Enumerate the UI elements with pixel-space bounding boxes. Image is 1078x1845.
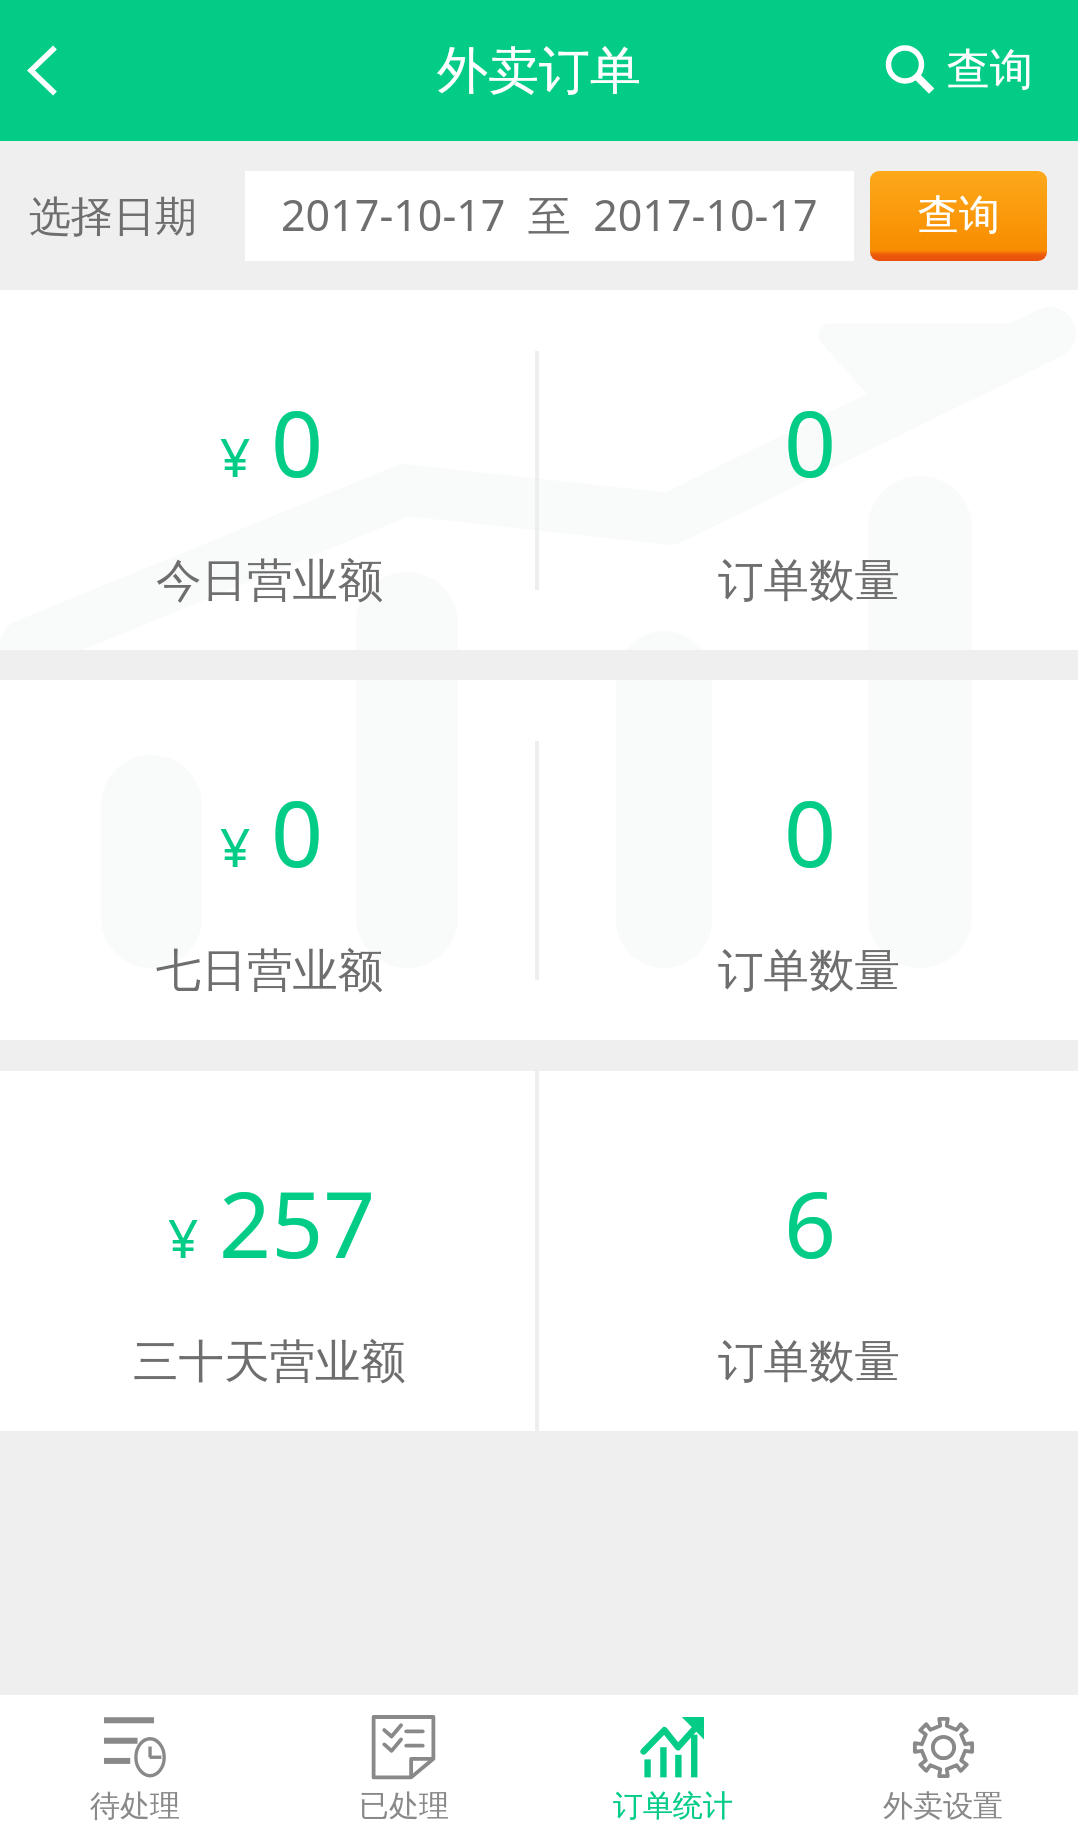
staticText: 七日营业额 (156, 942, 384, 999)
button[interactable]: 已处理 (269, 1695, 538, 1845)
staticText: 外卖设置 (883, 1787, 1003, 1825)
button[interactable]: 待处理 (0, 1695, 269, 1845)
staticText: 待处理 (90, 1787, 180, 1825)
staticText: ¥ 0 (220, 770, 324, 894)
staticText: 今日营业额 (156, 552, 384, 609)
staticText: 订单统计 (613, 1787, 733, 1825)
staticText: 订单数量 (718, 942, 900, 999)
button[interactable]: Back (0, 0, 100, 141)
staticText: ¥ 257 (168, 1161, 376, 1285)
staticText: 0 (784, 770, 837, 894)
button[interactable]: 查询 (870, 171, 1047, 261)
staticText: 订单数量 (718, 552, 900, 609)
button[interactable]: 订单统计 (538, 1695, 808, 1845)
staticText: 三十天营业额 (133, 1333, 406, 1390)
button[interactable]: 外卖设置 (808, 1695, 1078, 1845)
staticText: 查询 (947, 43, 1033, 97)
button[interactable]: 2017-10-17 至 2017-10-17 (245, 171, 854, 261)
staticText: 订单数量 (718, 1333, 900, 1390)
button[interactable]: 查询 (888, 0, 1078, 141)
staticText: 查询 (918, 190, 1000, 242)
staticText: 0 (784, 380, 837, 504)
staticText: 已处理 (359, 1787, 449, 1825)
staticText: 外卖订单 (437, 39, 641, 103)
staticText: 选择日期 (29, 191, 197, 244)
staticText: ¥ 0 (220, 380, 324, 504)
staticText: 2017-10-17 至 2017-10-17 (281, 185, 818, 244)
staticText: 6 (784, 1161, 837, 1285)
